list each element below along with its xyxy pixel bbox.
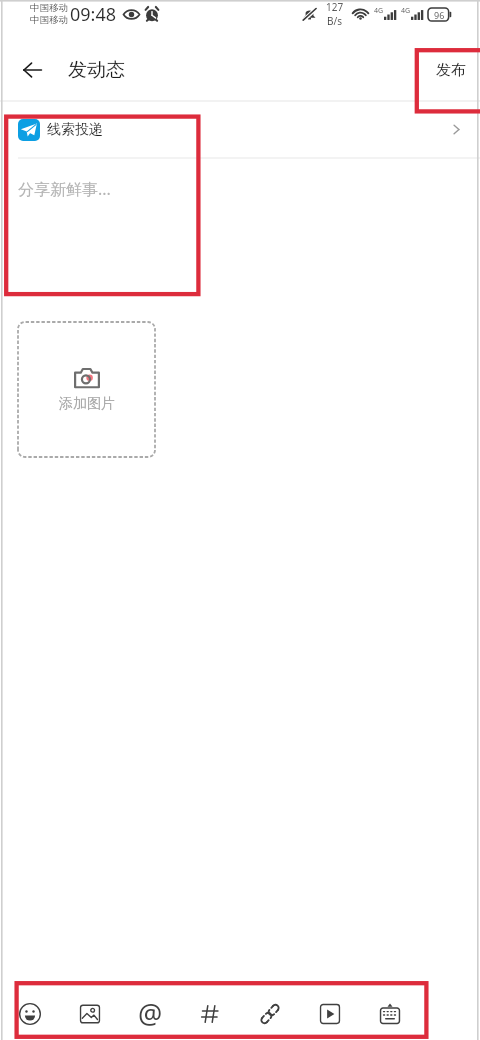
- staticText: 发动态: [68, 58, 125, 82]
- staticText: 96: [434, 9, 445, 21]
- staticText: 分享新鲜事...: [18, 178, 111, 200]
- staticText: 127: [326, 0, 344, 14]
- staticText: 09:48: [70, 2, 117, 27]
- staticText: 中国移动: [30, 14, 68, 26]
- staticText: @: [138, 995, 163, 1032]
- button[interactable]: Keyboard: [360, 988, 420, 1040]
- button[interactable]: Mention: [120, 988, 180, 1040]
- button[interactable]: 线索投递: [0, 102, 480, 157]
- staticText: 发布: [436, 61, 466, 80]
- button[interactable]: Link: [240, 988, 300, 1040]
- button[interactable]: Add photo: [17, 321, 156, 458]
- button[interactable]: Video: [300, 988, 360, 1040]
- staticText: 4G: [374, 6, 384, 16]
- staticText: 中国移动: [30, 2, 68, 14]
- button[interactable]: Topic: [180, 988, 240, 1040]
- staticText: B/s: [327, 14, 343, 28]
- button[interactable]: Back: [0, 40, 64, 100]
- staticText: 4G: [401, 6, 411, 16]
- button[interactable]: Emoji: [0, 988, 60, 1040]
- button[interactable]: Image: [60, 988, 120, 1040]
- button[interactable]: 发布: [418, 40, 480, 100]
- staticText: 线索投递: [47, 121, 103, 139]
- staticText: 添加图片: [59, 395, 115, 413]
